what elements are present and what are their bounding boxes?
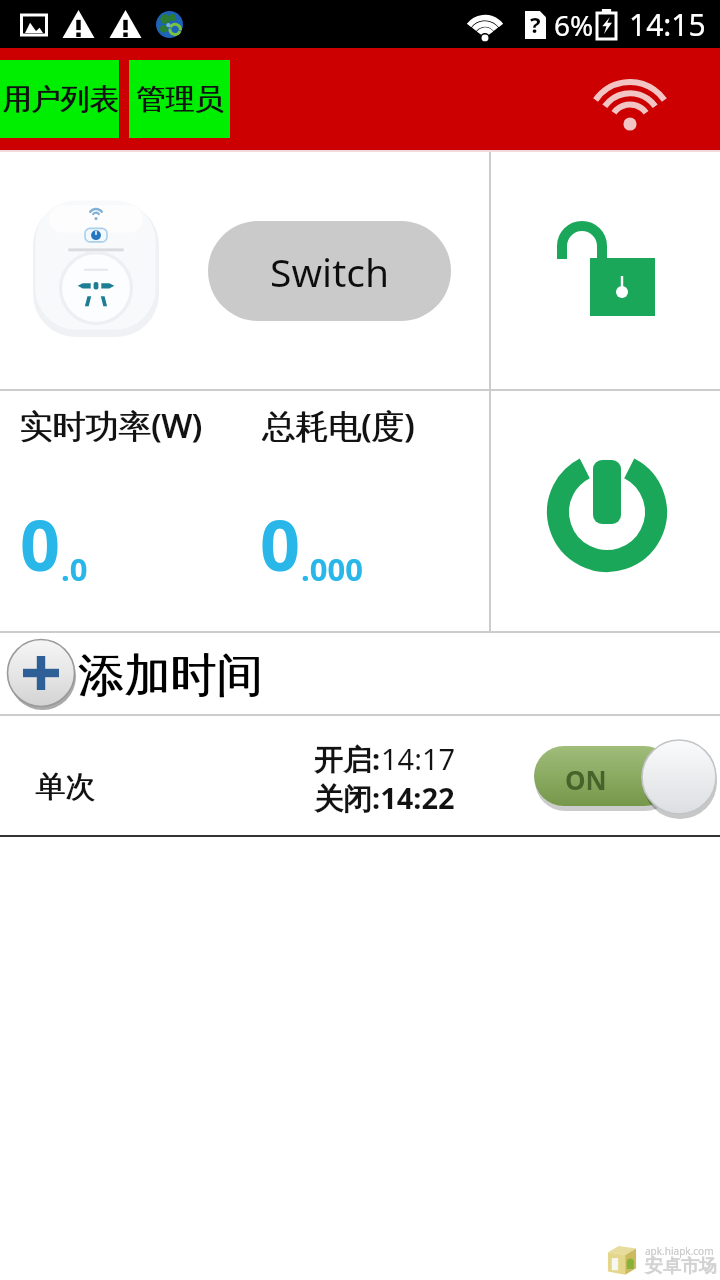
staticText: 总耗电(度) bbox=[262, 403, 414, 448]
button[interactable]: Power bbox=[545, 446, 669, 570]
button[interactable]: 管理员 bbox=[129, 60, 230, 138]
staticText: 6% bbox=[554, 6, 594, 44]
staticText: 14:15 bbox=[629, 4, 706, 45]
staticText: 单次 bbox=[36, 768, 96, 806]
button[interactable]: 用户列表 bbox=[0, 60, 119, 138]
staticText: .0 bbox=[61, 548, 88, 590]
staticText: 14:17 bbox=[381, 739, 456, 778]
staticText: 用户列表 bbox=[2, 81, 118, 118]
button[interactable]: 单次 bbox=[0, 716, 720, 835]
staticText: ON bbox=[565, 762, 607, 797]
staticText: 安卓市场 bbox=[645, 1255, 717, 1278]
staticText: 实时功率(W) bbox=[19, 403, 202, 448]
staticText: 用户列表 bbox=[3, 81, 119, 118]
staticText: 0 bbox=[260, 496, 301, 591]
button[interactable]: Lock bbox=[549, 210, 665, 330]
staticText: 管理员 bbox=[137, 81, 224, 118]
staticText: .000 bbox=[301, 548, 363, 590]
staticText: Switch bbox=[270, 245, 390, 298]
staticText: 单次 bbox=[35, 768, 95, 806]
staticText: 开启: bbox=[314, 739, 381, 779]
button[interactable]: WiFi status bbox=[588, 64, 672, 134]
button[interactable]: Switch bbox=[208, 221, 451, 321]
staticText: 关闭:14:22 bbox=[314, 778, 455, 818]
staticText: 总耗电(度) bbox=[263, 403, 415, 448]
button[interactable]: 添加时间 bbox=[0, 633, 720, 714]
staticText: ? bbox=[530, 9, 541, 39]
staticText: 实时功率(W) bbox=[20, 403, 203, 448]
staticText: 添加时间 bbox=[78, 647, 262, 705]
button[interactable]: Timer enabled bbox=[529, 737, 719, 817]
staticText: 管理员 bbox=[136, 81, 223, 118]
staticText: apk.hiapk.com bbox=[645, 1244, 714, 1258]
staticText: 添加时间 bbox=[79, 647, 263, 705]
staticText: 0 bbox=[20, 496, 61, 591]
